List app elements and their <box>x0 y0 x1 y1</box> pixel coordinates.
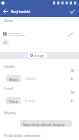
button[interactable]: Save contact <box>67 6 78 17</box>
button[interactable]: Ukladá do <box>0 29 79 39</box>
button[interactable]: Práca <box>6 97 21 104</box>
button[interactable]: Add E-mail <box>68 97 76 105</box>
button[interactable]: Pridať ďalšie informácie <box>4 133 41 137</box>
button[interactable]: Clear Telefón <box>68 66 76 74</box>
staticText: Telefón <box>4 65 15 69</box>
button[interactable]: Add Telefón <box>68 75 76 83</box>
staticText: E-mail <box>4 87 14 91</box>
staticText: E-mail <box>25 98 35 102</box>
staticText: Telefón <box>25 76 37 80</box>
staticText: Meno <box>4 19 13 23</box>
button[interactable]: Google <box>28 53 47 58</box>
button[interactable]: Clear E-mail <box>68 88 76 96</box>
staticText: Naposledy vybraté skupiny <box>23 122 65 126</box>
button[interactable]: Mobil <box>6 75 21 82</box>
staticText: Nový kontakt <box>11 10 31 14</box>
staticText: Skupiny <box>4 111 16 115</box>
button[interactable]: Edit <box>66 30 75 39</box>
staticText: Ukladá do <box>9 31 21 34</box>
button[interactable]: Naposledy vybraté skupiny <box>20 120 72 127</box>
staticText: Google <box>34 54 45 58</box>
button[interactable]: Back <box>0 6 10 17</box>
button[interactable]: Add photo <box>2 39 9 46</box>
staticText: meno@gmail.c <box>9 34 26 37</box>
staticText: Mobil <box>9 77 18 81</box>
staticText: Práca <box>9 99 18 103</box>
